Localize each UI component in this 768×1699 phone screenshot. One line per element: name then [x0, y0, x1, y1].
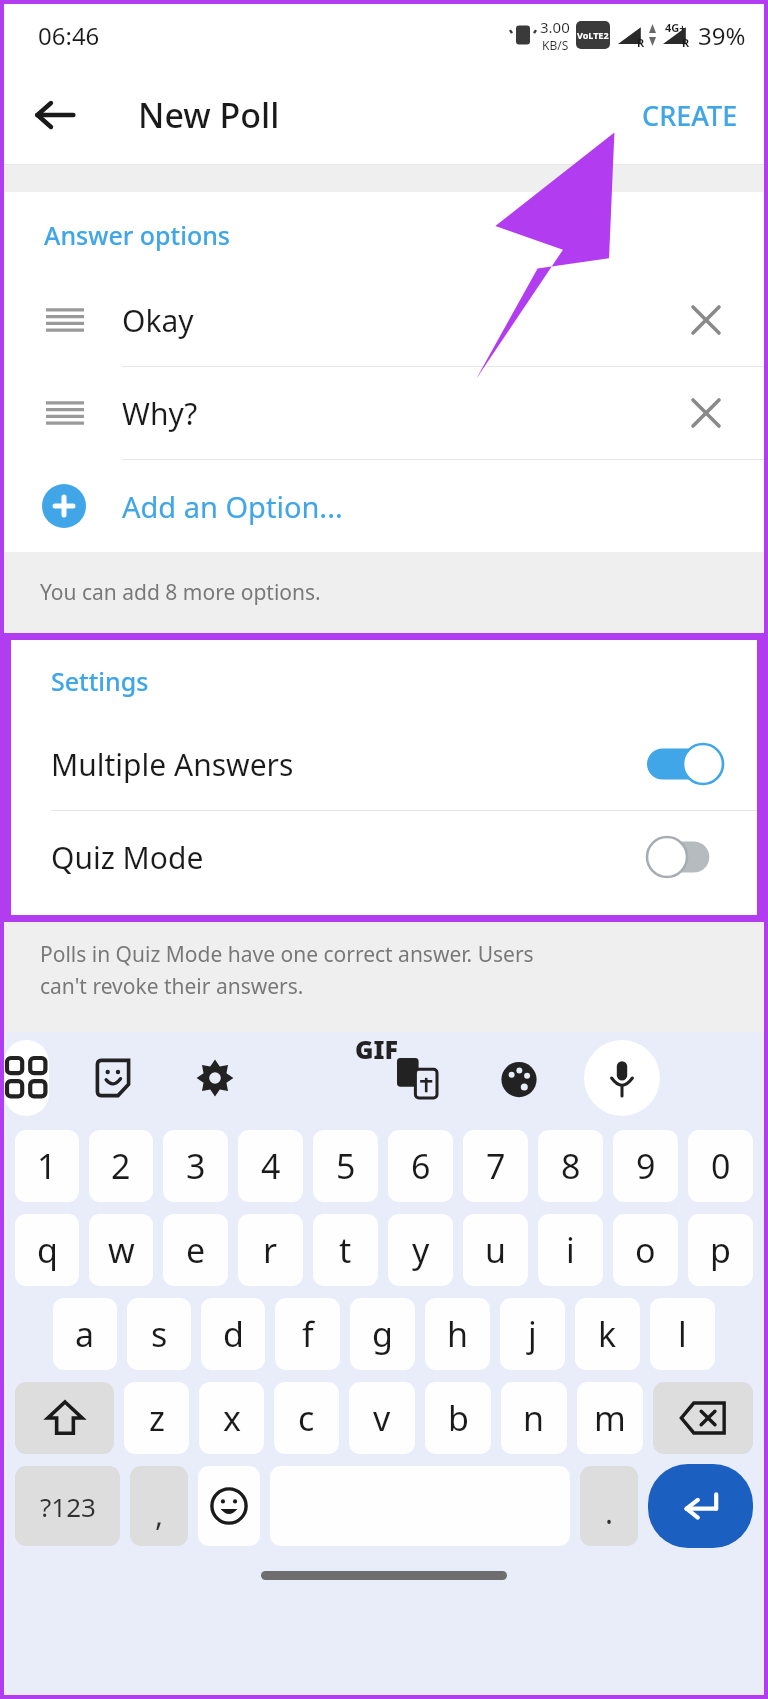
staticText: n	[523, 1395, 545, 1441]
button[interactable]: l	[650, 1298, 715, 1370]
button[interactable]: u	[463, 1214, 528, 1286]
staticText: 6	[411, 1143, 431, 1189]
staticText: ?123	[40, 1489, 96, 1524]
button[interactable]: w	[89, 1214, 153, 1286]
staticText: e	[186, 1227, 206, 1273]
button[interactable]: v	[349, 1382, 415, 1454]
button[interactable]: Back	[22, 82, 88, 148]
staticText: c	[298, 1395, 315, 1441]
button[interactable]: Reorder	[4, 367, 764, 459]
staticText: ,	[155, 1494, 164, 1535]
button[interactable]: 7	[463, 1130, 528, 1202]
staticText: 1	[37, 1143, 57, 1189]
staticText: u	[485, 1227, 507, 1273]
staticText: 39%	[698, 19, 746, 52]
button[interactable]: p	[688, 1214, 753, 1286]
staticText: R	[682, 35, 690, 50]
button[interactable]: ?123	[15, 1466, 120, 1546]
button[interactable]: ,	[130, 1466, 188, 1546]
staticText: 4G+	[665, 20, 686, 35]
button[interactable]: 0	[688, 1130, 753, 1202]
button[interactable]: b	[425, 1382, 491, 1454]
button[interactable]: y	[388, 1214, 453, 1286]
staticText: z	[149, 1395, 165, 1441]
button[interactable]: Quiz Mode	[11, 811, 757, 903]
button[interactable]: 6	[388, 1130, 453, 1202]
staticText: 5	[336, 1143, 356, 1189]
button[interactable]: x	[199, 1382, 264, 1454]
staticText: You can add 8 more options.	[40, 578, 321, 607]
button[interactable]: Stickers	[75, 1040, 151, 1116]
button[interactable]: 2	[89, 1130, 153, 1202]
button[interactable]: Backspace	[653, 1382, 753, 1454]
button[interactable]: Theme	[481, 1040, 557, 1116]
button[interactable]: Settings	[177, 1040, 253, 1116]
button[interactable]: t	[313, 1214, 378, 1286]
staticText: 3	[186, 1143, 206, 1189]
staticText: m	[594, 1395, 626, 1441]
button[interactable]: Multiple Answers	[11, 718, 757, 810]
button[interactable]: m	[577, 1382, 643, 1454]
button[interactable]: i	[538, 1214, 603, 1286]
button[interactable]: .	[580, 1466, 638, 1546]
staticText: Add an Option...	[122, 487, 343, 526]
button[interactable]: Enter	[648, 1464, 753, 1548]
staticText: CREATE	[642, 97, 738, 134]
button[interactable]: f	[275, 1298, 340, 1370]
staticText: 06:46	[38, 19, 100, 52]
button[interactable]: Voice input	[584, 1040, 660, 1116]
button[interactable]: a	[53, 1298, 117, 1370]
button[interactable]: Remove option	[678, 292, 734, 348]
staticText: y	[412, 1227, 430, 1273]
button[interactable]: CREATE	[630, 81, 750, 150]
staticText: 9	[636, 1143, 656, 1189]
button[interactable]: q	[15, 1214, 79, 1286]
button[interactable]: s	[127, 1298, 191, 1370]
button[interactable]: Shift	[15, 1382, 114, 1454]
button[interactable]: 3	[163, 1130, 228, 1202]
button[interactable]: Translate	[379, 1040, 455, 1116]
button[interactable]: r	[238, 1214, 303, 1286]
button[interactable]: g	[350, 1298, 415, 1370]
staticText: Answer options	[44, 218, 231, 252]
staticText: Polls in Quiz Mode have one correct answ…	[40, 940, 534, 1000]
staticText: a	[75, 1311, 95, 1357]
staticText: s	[151, 1311, 168, 1357]
button[interactable]: c	[274, 1382, 339, 1454]
staticText: q	[37, 1227, 58, 1273]
button[interactable]: 5	[313, 1130, 378, 1202]
button[interactable]: Emoji	[198, 1466, 260, 1546]
button[interactable]: Reorder	[4, 274, 764, 366]
button[interactable]: 1	[15, 1130, 79, 1202]
staticText: KB/S	[542, 37, 569, 53]
button[interactable]: 8	[538, 1130, 603, 1202]
staticText: Why?	[122, 393, 678, 434]
button[interactable]: Add an Option...	[4, 460, 764, 552]
staticText: w	[108, 1227, 135, 1273]
staticText: GIF	[355, 1032, 398, 1066]
button[interactable]: Apps	[4, 1040, 49, 1116]
staticText: 7	[486, 1143, 506, 1189]
staticText: 8	[561, 1143, 581, 1189]
staticText: .	[605, 1492, 614, 1533]
button[interactable]: h	[425, 1298, 490, 1370]
button[interactable]: e	[163, 1214, 228, 1286]
button[interactable]: 9	[613, 1130, 678, 1202]
button[interactable]: o	[613, 1214, 678, 1286]
button[interactable]: d	[201, 1298, 265, 1370]
button[interactable]: Remove option	[678, 385, 734, 441]
button[interactable]: n	[501, 1382, 567, 1454]
button[interactable]: j	[500, 1298, 565, 1370]
button[interactable]: 4	[238, 1130, 303, 1202]
staticText: 0	[711, 1143, 731, 1189]
staticText: Okay	[122, 300, 678, 341]
button[interactable]: k	[575, 1298, 640, 1370]
staticText: b	[448, 1395, 469, 1441]
staticText: d	[223, 1311, 244, 1357]
staticText: r	[263, 1227, 278, 1273]
staticText: k	[598, 1311, 617, 1357]
other: Reorder	[46, 399, 84, 427]
button[interactable]: z	[124, 1382, 189, 1454]
